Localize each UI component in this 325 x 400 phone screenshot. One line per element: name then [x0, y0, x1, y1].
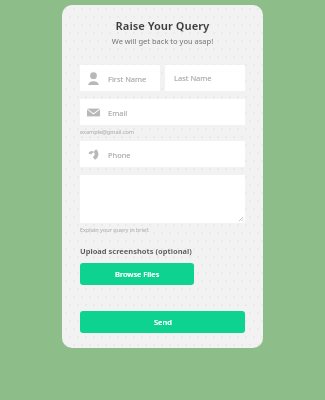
- button[interactable]: Send: [80, 311, 245, 333]
- button[interactable]: Phone: [80, 141, 245, 167]
- staticText: First Name: [108, 74, 147, 84]
- staticText: We will get back to you asap!: [62, 36, 263, 46]
- staticText: Upload screenshots (optional): [80, 246, 192, 256]
- staticText: Raise Your Query: [62, 18, 263, 33]
- button[interactable]: First Name: [80, 65, 160, 91]
- staticText: Phone: [108, 150, 131, 160]
- staticText: Last Name: [174, 73, 212, 83]
- staticText: example@gmail.com: [80, 128, 135, 135]
- button[interactable]: Email: [80, 99, 245, 125]
- staticText: Explain your query in brief.: [80, 226, 150, 233]
- staticText: Browse Files: [115, 269, 160, 279]
- staticText: Send: [154, 317, 172, 327]
- button[interactable]: Browse Files: [80, 263, 194, 285]
- button[interactable]: Last Name: [165, 65, 245, 91]
- staticText: Email: [108, 108, 128, 118]
